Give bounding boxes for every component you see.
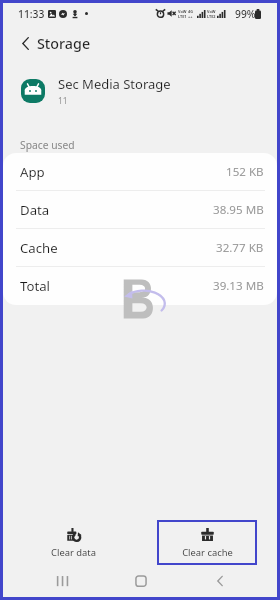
staticText: Clear cache: [182, 546, 233, 559]
staticText: Storage: [37, 34, 91, 53]
button[interactable]: Back: [6, 24, 44, 62]
staticText: Cache: [20, 239, 58, 257]
button[interactable]: Sec Media Storage: [3, 62, 277, 120]
staticText: 152 KB: [226, 164, 264, 180]
staticText: Sec Media Storage: [58, 75, 171, 93]
button[interactable]: Recents: [22, 569, 101, 593]
button[interactable]: Total: [3, 267, 277, 305]
button[interactable]: Home: [101, 569, 180, 593]
staticText: ++: [188, 14, 193, 19]
button[interactable]: App: [3, 153, 277, 191]
button[interactable]: Cache: [3, 229, 277, 267]
staticText: 38.95 MB: [213, 202, 264, 218]
staticText: 11: [58, 95, 68, 107]
staticText: 32.77 KB: [216, 240, 264, 256]
staticText: LTE2: [207, 14, 216, 19]
staticText: LTE1: [178, 14, 187, 19]
staticText: 99%: [235, 7, 256, 21]
staticText: Total: [20, 277, 50, 295]
staticText: 11:33: [18, 7, 45, 21]
staticText: VoW: [207, 9, 216, 14]
button[interactable]: Clear data: [24, 520, 123, 565]
staticText: Clear data: [51, 546, 96, 559]
staticText: 39.13 MB: [213, 278, 264, 294]
button[interactable]: Back: [180, 569, 259, 593]
button[interactable]: Data: [3, 191, 277, 229]
staticText: VoW: [178, 9, 187, 14]
staticText: Data: [20, 201, 50, 219]
button[interactable]: Clear cache: [157, 520, 257, 565]
staticText: 4G: [188, 9, 193, 14]
staticText: Space used: [20, 138, 75, 152]
staticText: App: [20, 163, 45, 181]
